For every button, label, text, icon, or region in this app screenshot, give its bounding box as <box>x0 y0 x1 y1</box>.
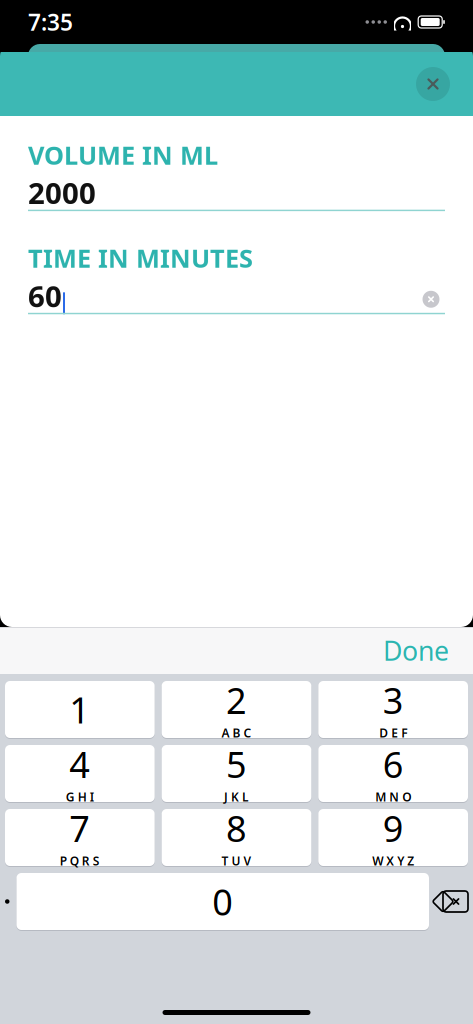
button[interactable]: 5 <box>162 745 311 802</box>
button[interactable]: 0 <box>16 873 429 930</box>
staticText: 60 <box>28 276 62 315</box>
staticText: 1 <box>69 686 90 733</box>
staticText: 3 <box>383 676 404 724</box>
staticText: J K L <box>224 789 249 805</box>
button[interactable]: 1 <box>5 681 155 738</box>
staticText: W X Y Z <box>372 853 414 869</box>
staticText: 6 <box>383 740 404 788</box>
staticText: M N O <box>375 789 411 805</box>
staticText: TIME IN MINUTES <box>28 241 253 275</box>
staticText: D E F <box>379 725 407 741</box>
staticText: 8 <box>226 804 247 852</box>
staticText: 4 <box>69 740 90 788</box>
staticText: 7 <box>69 804 90 852</box>
staticText: 9 <box>383 804 404 852</box>
button[interactable]: Clear text <box>417 285 445 313</box>
button[interactable]: 9 <box>318 809 468 866</box>
button[interactable]: 3 <box>318 681 468 738</box>
button[interactable]: Done <box>373 627 459 674</box>
button[interactable]: 2 <box>162 681 311 738</box>
staticText: 7:35 <box>28 7 73 37</box>
button[interactable]: Delete <box>436 873 468 930</box>
button[interactable]: 6 <box>318 745 468 802</box>
staticText: A B C <box>221 725 251 741</box>
staticText: G H I <box>66 789 94 805</box>
staticText: 2000 <box>28 173 96 212</box>
button[interactable]: 7 <box>5 809 155 866</box>
button[interactable]: Close <box>410 61 456 107</box>
staticText: 0 <box>212 878 233 925</box>
staticText: 5 <box>226 740 247 788</box>
button[interactable]: 4 <box>5 745 155 802</box>
staticText: P Q R S <box>60 853 100 869</box>
staticText: T U V <box>221 853 251 869</box>
button[interactable]: Decimal point <box>5 873 9 930</box>
staticText: VOLUME IN ML <box>28 138 218 172</box>
staticText: Done <box>383 633 449 668</box>
staticText: 2 <box>226 676 247 724</box>
button[interactable]: 8 <box>162 809 311 866</box>
